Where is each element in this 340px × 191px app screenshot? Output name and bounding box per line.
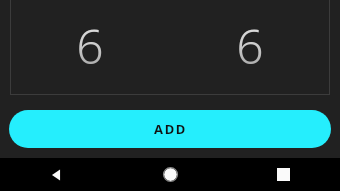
button[interactable]: 6 bbox=[170, 0, 330, 95]
button[interactable]: Back bbox=[0, 158, 114, 191]
button[interactable]: ADD bbox=[9, 110, 331, 148]
button[interactable]: 6 bbox=[10, 0, 170, 95]
staticText: ADD bbox=[154, 120, 187, 138]
button[interactable]: Home bbox=[114, 158, 227, 191]
button[interactable]: Recent apps bbox=[227, 158, 340, 191]
staticText: 6 bbox=[236, 13, 264, 78]
staticText: 6 bbox=[76, 13, 104, 78]
